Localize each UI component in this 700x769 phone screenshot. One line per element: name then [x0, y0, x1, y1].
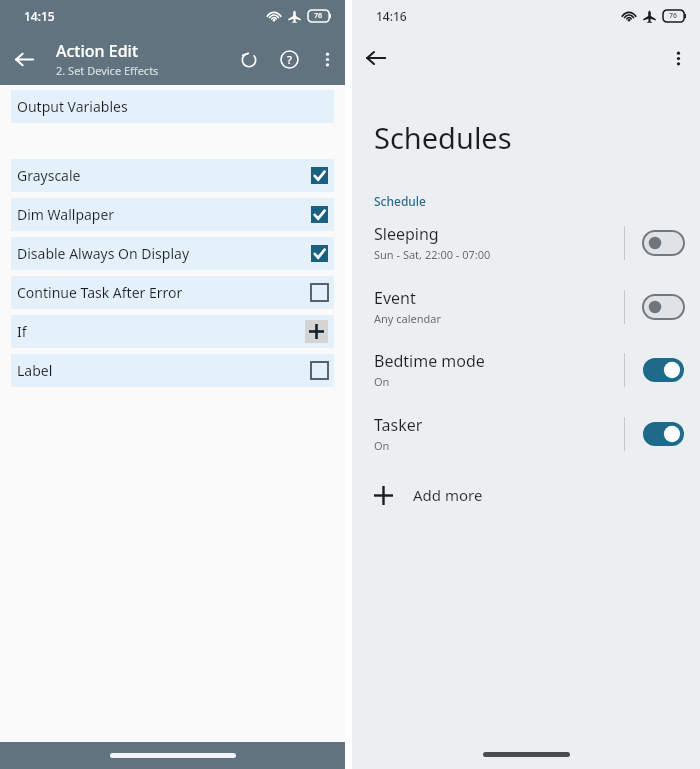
- button[interactable]: More options: [656, 36, 700, 80]
- button[interactable]: Disable Always On Display: [11, 237, 334, 270]
- button[interactable]: Event toggle: [639, 291, 688, 323]
- button[interactable]: Tasker toggle: [639, 418, 688, 450]
- staticText: Tasker: [374, 414, 423, 436]
- staticText: On: [374, 374, 390, 389]
- button[interactable]: Event: [352, 287, 700, 326]
- staticText: Any calendar: [374, 311, 442, 326]
- button[interactable]: Bedtime mode: [352, 350, 700, 389]
- button[interactable]: Tasker: [352, 414, 700, 453]
- button[interactable]: Grayscale: [11, 159, 334, 192]
- staticText: Grayscale: [17, 166, 311, 185]
- button[interactable]: Back: [352, 34, 400, 82]
- staticText: Add more: [413, 485, 483, 505]
- staticText: ?: [287, 52, 292, 67]
- staticText: 76: [314, 11, 323, 21]
- staticText: Sun - Sat, 22:00 - 07:00: [374, 247, 491, 262]
- staticText: Disable Always On Display: [17, 244, 311, 263]
- staticText: If: [17, 322, 305, 341]
- staticText: Label: [17, 361, 311, 380]
- staticText: Bedtime mode: [374, 350, 485, 372]
- staticText: Sleeping: [374, 223, 439, 245]
- button[interactable]: Add condition: [305, 320, 328, 343]
- staticText: Schedule: [374, 193, 426, 209]
- staticText: Dim Wallpaper: [17, 205, 311, 224]
- staticText: Continue Task After Error: [17, 283, 311, 302]
- button[interactable]: Sleeping toggle: [639, 227, 688, 259]
- staticText: On: [374, 438, 390, 453]
- staticText: 14:15: [24, 8, 55, 24]
- staticText: Event: [374, 287, 416, 309]
- staticText: Output Variables: [17, 97, 328, 116]
- button[interactable]: Add more: [352, 479, 700, 511]
- button[interactable]: More options: [309, 41, 345, 77]
- button[interactable]: If: [11, 315, 334, 348]
- staticText: 14:16: [376, 8, 407, 24]
- button[interactable]: Output Variables: [11, 90, 334, 123]
- button[interactable]: Help: [269, 39, 309, 79]
- staticText: Action Edit: [56, 40, 139, 62]
- button[interactable]: Label: [11, 354, 334, 387]
- staticText: Schedules: [374, 118, 512, 157]
- button[interactable]: Continue Task After Error: [11, 276, 334, 309]
- button[interactable]: Sleeping: [352, 223, 700, 262]
- button[interactable]: Back: [0, 35, 48, 83]
- staticText: 2. Set Device Effects: [56, 63, 159, 78]
- staticText: 76: [669, 11, 678, 21]
- button[interactable]: Undo: [229, 39, 269, 79]
- button[interactable]: Dim Wallpaper: [11, 198, 334, 231]
- button[interactable]: Bedtime mode toggle: [639, 354, 688, 386]
